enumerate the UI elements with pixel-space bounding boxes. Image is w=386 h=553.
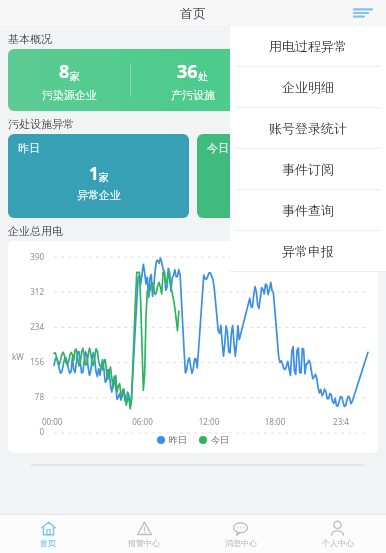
staticText: 8	[59, 59, 70, 84]
button[interactable]: 事件查询	[230, 190, 386, 230]
staticText: 390	[8, 251, 44, 262]
button[interactable]: 8	[8, 49, 378, 111]
staticText: 昨日	[169, 434, 187, 445]
staticText: 消息中心	[225, 538, 257, 548]
staticText: 异常申报	[282, 243, 334, 259]
staticText: 首页	[40, 538, 56, 548]
staticText: 78	[8, 391, 44, 402]
staticText: 产污设施	[171, 88, 215, 102]
button[interactable]: 事件订阅	[230, 149, 386, 189]
button[interactable]: 企业明细	[230, 67, 386, 107]
staticText: 今日	[207, 141, 229, 155]
staticText: 用电过程异常	[269, 38, 347, 54]
staticText: 昨日	[18, 141, 40, 155]
staticText: 企业明细	[282, 79, 334, 95]
staticText: 1	[89, 162, 99, 185]
staticText: 家	[99, 171, 109, 184]
button[interactable]: 今日	[197, 134, 378, 218]
staticText: 污处设施异常	[8, 117, 74, 131]
staticText: 36	[177, 59, 198, 84]
staticText: 0	[8, 426, 44, 437]
staticText: 异常企业	[266, 188, 310, 202]
staticText: 处	[198, 70, 208, 83]
staticText: 12:00	[176, 416, 242, 427]
staticText: 报警中心	[128, 538, 160, 548]
staticText: 06:00	[109, 416, 176, 427]
staticText: 首页	[180, 5, 206, 21]
button[interactable]: 用电过程异常	[230, 26, 386, 66]
staticText: 基本概况	[8, 32, 52, 46]
button[interactable]: 个人中心	[289, 515, 386, 553]
staticText: 污处设施	[295, 88, 339, 102]
staticText: 企业总用电	[8, 224, 63, 238]
staticText: 处	[322, 70, 332, 83]
button[interactable]: 消息中心	[192, 515, 289, 553]
staticText: 家	[70, 70, 80, 83]
staticText: 312	[8, 286, 44, 297]
staticText: 异常企业	[77, 188, 121, 202]
staticText: 账号登录统计	[269, 120, 347, 136]
button[interactable]: 异常申报	[230, 231, 386, 271]
staticText: 家	[288, 171, 298, 184]
staticText: 234	[8, 321, 44, 332]
staticText: 事件查询	[282, 202, 334, 218]
staticText: 35	[301, 59, 322, 84]
button[interactable]: 首页	[0, 515, 96, 553]
staticText: 0	[278, 162, 288, 185]
button[interactable]: 账号登录统计	[230, 108, 386, 148]
staticText: 23:4	[308, 416, 374, 427]
staticText: 今日	[211, 434, 229, 445]
staticText: 18:00	[242, 416, 308, 427]
staticText: 污染源企业	[42, 88, 97, 102]
button[interactable]: 报警中心	[96, 515, 192, 553]
staticText: kW	[12, 351, 24, 362]
button[interactable]: 昨日	[8, 134, 189, 218]
button[interactable]: Menu	[350, 0, 376, 26]
staticText: 156	[8, 356, 44, 367]
staticText: 00:00	[42, 416, 109, 427]
staticText: 事件订阅	[282, 161, 334, 177]
staticText: 个人中心	[322, 538, 354, 548]
